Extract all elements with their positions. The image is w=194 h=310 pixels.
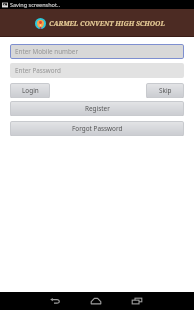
staticText: Saving screenshot..: [10, 1, 60, 8]
button[interactable]: Enter Password: [10, 63, 184, 78]
button[interactable]: Enter Mobile number: [10, 44, 184, 59]
staticText: Forgot Password: [72, 124, 123, 133]
button[interactable]: Back: [43, 292, 67, 310]
staticText: Enter Password: [15, 66, 61, 75]
button[interactable]: Home: [84, 292, 108, 310]
staticText: Skip: [159, 86, 172, 95]
button[interactable]: Forgot Password: [10, 121, 184, 136]
staticText: Enter Mobile number: [15, 47, 78, 56]
button[interactable]: Recent apps: [125, 292, 149, 310]
staticText: Login: [22, 86, 39, 95]
staticText: Register: [85, 104, 110, 113]
staticText: CARMEL CONVENT HIGH SCHOOL: [49, 19, 165, 28]
button[interactable]: Register: [10, 101, 184, 116]
button[interactable]: Login: [10, 83, 50, 98]
button[interactable]: Skip: [146, 83, 184, 98]
